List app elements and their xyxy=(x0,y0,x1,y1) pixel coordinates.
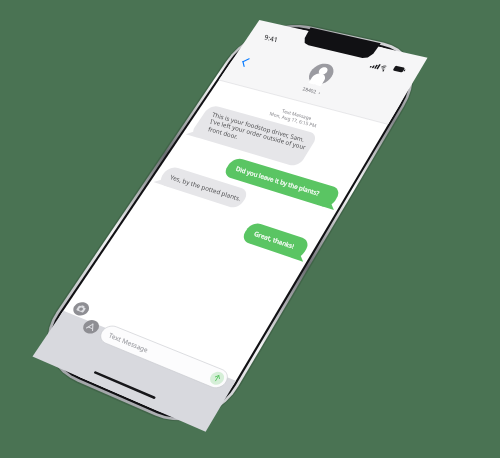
button[interactable]: iPhone messaging conversation mockup xyxy=(0,0,500,458)
